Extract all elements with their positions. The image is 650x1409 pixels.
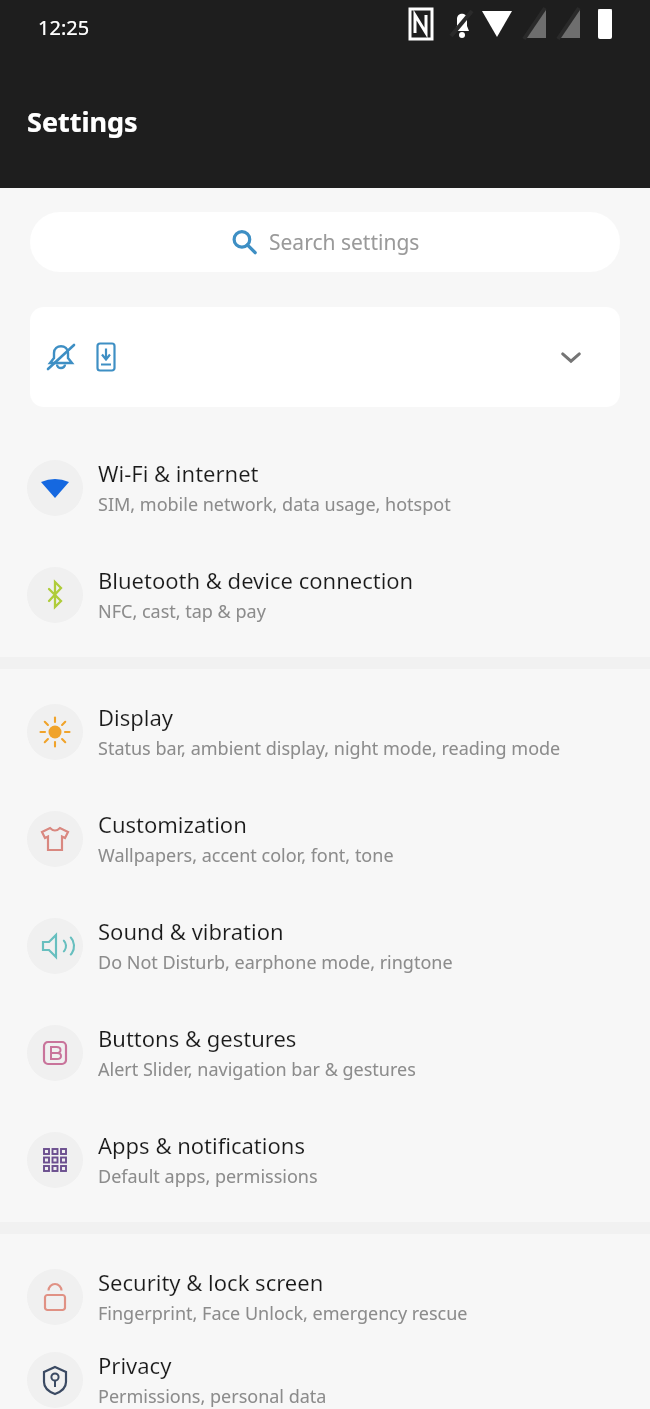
staticText: Sound & vibration	[98, 916, 284, 946]
staticText: SIM, mobile network, data usage, hotspot	[98, 492, 451, 517]
staticText: NFC, cast, tap & pay	[98, 599, 266, 624]
staticText: Search settings	[269, 228, 420, 257]
staticText: Wi-Fi & internet	[98, 458, 259, 488]
staticText: Bluetooth & device connection	[98, 565, 414, 595]
staticText: 12:25	[38, 14, 90, 41]
button[interactable]: Buttons & gestures	[0, 999, 650, 1106]
staticText: Status bar, ambient display, night mode,…	[98, 736, 561, 761]
button[interactable]: Sound & vibration	[0, 892, 650, 999]
staticText: Security & lock screen	[98, 1267, 324, 1297]
button[interactable]: Display	[0, 678, 650, 785]
button[interactable]: Bluetooth & device connection	[0, 541, 650, 648]
staticText: Do Not Disturb, earphone mode, ringtone	[98, 950, 453, 975]
staticText: Default apps, permissions	[98, 1164, 318, 1189]
button[interactable]: Security & lock screen	[0, 1243, 650, 1350]
staticText: Apps & notifications	[98, 1130, 305, 1160]
button[interactable]: Customization	[0, 785, 650, 892]
button[interactable]: Privacy	[0, 1350, 650, 1409]
button[interactable]: Search settings	[30, 212, 620, 272]
staticText: Customization	[98, 809, 247, 839]
staticText: Buttons & gestures	[98, 1023, 297, 1053]
staticText: Permissions, personal data	[98, 1384, 327, 1409]
staticText: Display	[98, 702, 174, 732]
staticText: Wallpapers, accent color, font, tone	[98, 843, 394, 868]
button[interactable]: Wi-Fi & internet	[0, 434, 650, 541]
button[interactable]: Expand	[554, 340, 588, 374]
staticText: Fingerprint, Face Unlock, emergency resc…	[98, 1301, 468, 1326]
staticText: Privacy	[98, 1350, 172, 1380]
button[interactable]: Apps & notifications	[0, 1106, 650, 1213]
staticText: Alert Slider, navigation bar & gestures	[98, 1057, 416, 1082]
button[interactable]: Expand	[30, 307, 620, 407]
staticText: Settings	[27, 103, 138, 140]
